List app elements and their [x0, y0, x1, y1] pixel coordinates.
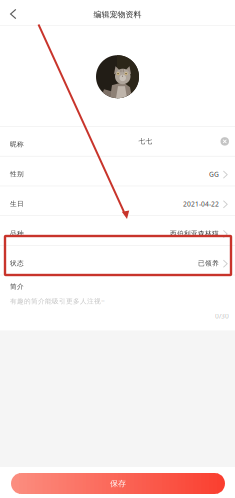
staticText: 保存 — [110, 479, 126, 488]
staticText: 七七 — [138, 137, 152, 145]
staticText: 有趣的简介能吸引更多人注视~ — [10, 297, 105, 305]
staticText: 品种 — [10, 229, 24, 238]
button[interactable]: Clear nickname — [216, 133, 229, 150]
staticText: 已领养 — [198, 259, 219, 267]
staticText: 状态 — [10, 259, 24, 267]
staticText: 编辑宠物资料 — [93, 10, 141, 19]
button[interactable]: 性别 — [0, 157, 235, 186]
staticText: 西伯利亚森林猫 — [170, 229, 219, 238]
staticText: 性别 — [10, 170, 24, 178]
staticText: 简介 — [10, 282, 24, 291]
staticText: GG — [209, 170, 219, 179]
staticText: 昵称 — [10, 140, 24, 148]
button[interactable]: 生日 — [0, 186, 235, 215]
button[interactable]: Change avatar — [96, 55, 139, 98]
staticText: 0/30 — [215, 311, 229, 320]
button[interactable]: 保存 — [0, 467, 235, 498]
staticText: 生日 — [10, 200, 24, 208]
button[interactable]: 状态 — [0, 246, 235, 275]
button[interactable]: Back — [0, 0, 23, 25]
button[interactable]: 品种 — [0, 216, 235, 245]
staticText: 2021-04-22 — [183, 199, 219, 208]
button[interactable]: 昵称 — [0, 127, 235, 156]
